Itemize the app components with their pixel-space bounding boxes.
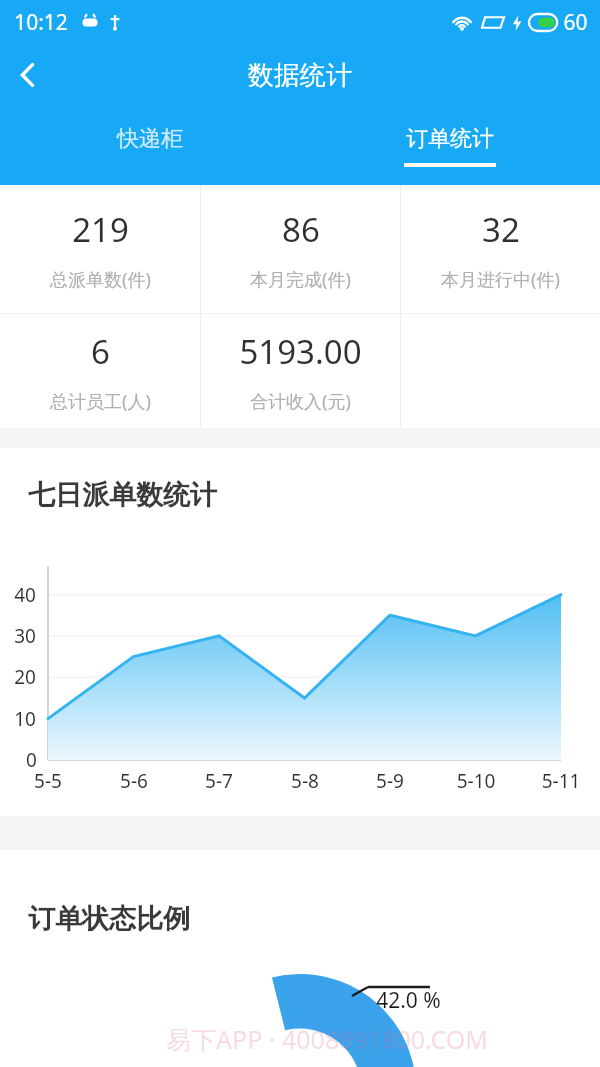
staticText: 219 xyxy=(72,207,129,252)
staticText: 易下APP · 4008891800.COM xyxy=(166,1022,488,1056)
staticText: 数据统计 xyxy=(248,59,352,92)
staticText: 5193.00 xyxy=(239,329,362,374)
staticText: 60 xyxy=(563,8,588,37)
staticText: 32 xyxy=(482,207,520,252)
staticText: 5-11 xyxy=(539,768,583,794)
button[interactable]: 6 xyxy=(0,314,200,428)
staticText: 0 xyxy=(26,747,37,773)
staticText: 42.0 % xyxy=(376,986,441,1015)
staticText: 七日派单数统计 xyxy=(28,478,217,512)
staticText: 6 xyxy=(91,329,110,374)
staticText: 订单统计 xyxy=(406,125,494,153)
button[interactable]: 5193.00 xyxy=(201,314,400,428)
staticText: 合计收入(元) xyxy=(250,389,351,414)
staticText: 86 xyxy=(282,207,320,252)
staticText: 40 xyxy=(14,582,36,608)
staticText: 10:12 xyxy=(14,8,68,37)
staticText: 5-6 xyxy=(112,768,156,794)
staticText: 总计员工(人) xyxy=(50,389,151,414)
button[interactable]: 快递柜 xyxy=(0,106,300,185)
staticText: 快递柜 xyxy=(117,125,183,153)
staticText: 30 xyxy=(14,623,36,649)
staticText: 10 xyxy=(14,706,36,732)
staticText: 本月完成(件) xyxy=(250,267,351,292)
staticText: 订单状态比例 xyxy=(28,902,190,936)
staticText: 5-8 xyxy=(283,768,327,794)
button[interactable]: 订单统计 xyxy=(300,106,600,185)
staticText: 总派单数(件) xyxy=(50,267,151,292)
staticText: 本月进行中(件) xyxy=(441,267,560,292)
staticText: 5-9 xyxy=(368,768,412,794)
staticText: 20 xyxy=(14,664,36,690)
staticText: 5-5 xyxy=(26,768,70,794)
button[interactable]: 32 xyxy=(401,185,600,313)
staticText: 5-7 xyxy=(197,768,241,794)
button[interactable]: 86 xyxy=(201,185,400,313)
staticText: 5-10 xyxy=(454,768,498,794)
button[interactable]: Back xyxy=(0,47,56,103)
button[interactable]: 219 xyxy=(0,185,200,313)
